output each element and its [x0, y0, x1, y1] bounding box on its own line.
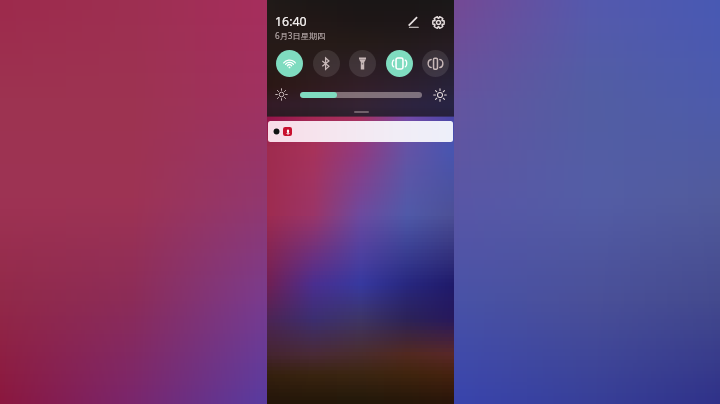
- button[interactable]: Bluetooth: [313, 50, 340, 77]
- button[interactable]: [268, 121, 453, 142]
- button[interactable]: Vibrate: [386, 50, 413, 77]
- button[interactable]: Wi-Fi: [276, 50, 303, 77]
- button[interactable]: Flashlight: [349, 50, 376, 77]
- button[interactable]: Brightness: [300, 92, 422, 98]
- button[interactable]: Edit: [403, 12, 423, 32]
- button[interactable]: Settings: [428, 12, 448, 32]
- button[interactable]: Sound: [422, 50, 449, 77]
- staticText: 16:40: [275, 13, 307, 30]
- staticText: 6月3日星期四: [275, 30, 326, 41]
